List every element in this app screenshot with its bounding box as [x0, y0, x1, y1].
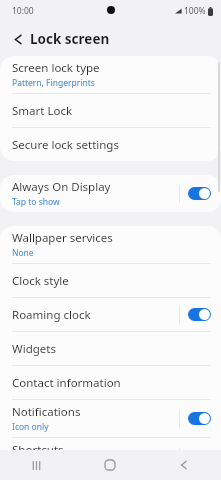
staticText: Contact information — [12, 375, 121, 391]
staticText: Pattern, Fingerprints — [12, 77, 95, 89]
button[interactable]: Widgets — [0, 332, 221, 365]
staticText: Shortcuts — [12, 442, 64, 458]
staticText: Tap to show — [12, 196, 60, 208]
staticText: Icon only — [12, 421, 49, 433]
staticText: Widgets — [12, 341, 56, 357]
button[interactable]: Always On Display — [0, 175, 221, 212]
button[interactable]: Contact information — [0, 366, 221, 399]
button[interactable]: Smart Lock — [0, 94, 221, 127]
button[interactable]: Back — [8, 29, 28, 49]
button[interactable]: Home — [73, 450, 147, 480]
staticText: App shortcuts — [12, 459, 68, 471]
button[interactable]: Shortcuts — [0, 438, 221, 475]
staticText: Always On Display — [12, 179, 111, 195]
button[interactable]: Toggle — [188, 187, 211, 200]
button[interactable]: Notifications — [0, 400, 221, 437]
staticText: Roaming clock — [12, 307, 91, 323]
button[interactable]: Roaming clock — [0, 298, 221, 331]
button[interactable]: Secure lock settings — [0, 128, 221, 161]
button[interactable]: Toggle — [188, 308, 211, 321]
staticText: Secure lock settings — [12, 137, 119, 153]
staticText: Smart Lock — [12, 103, 73, 119]
button[interactable]: Recents — [0, 450, 73, 480]
button[interactable]: Wallpaper services — [0, 226, 221, 263]
staticText: Clock style — [12, 273, 69, 289]
staticText: 10:00 — [12, 5, 34, 17]
button[interactable]: Back — [147, 450, 221, 480]
staticText: Wallpaper services — [12, 230, 113, 246]
button[interactable]: Toggle — [188, 412, 211, 425]
staticText: None — [12, 247, 34, 259]
button[interactable]: Clock style — [0, 264, 221, 297]
staticText: Screen lock type — [12, 60, 100, 76]
staticText: Lock screen — [30, 30, 110, 48]
button[interactable]: Screen lock type — [0, 56, 221, 93]
staticText: Notifications — [12, 404, 81, 420]
staticText: 100% — [184, 5, 206, 17]
